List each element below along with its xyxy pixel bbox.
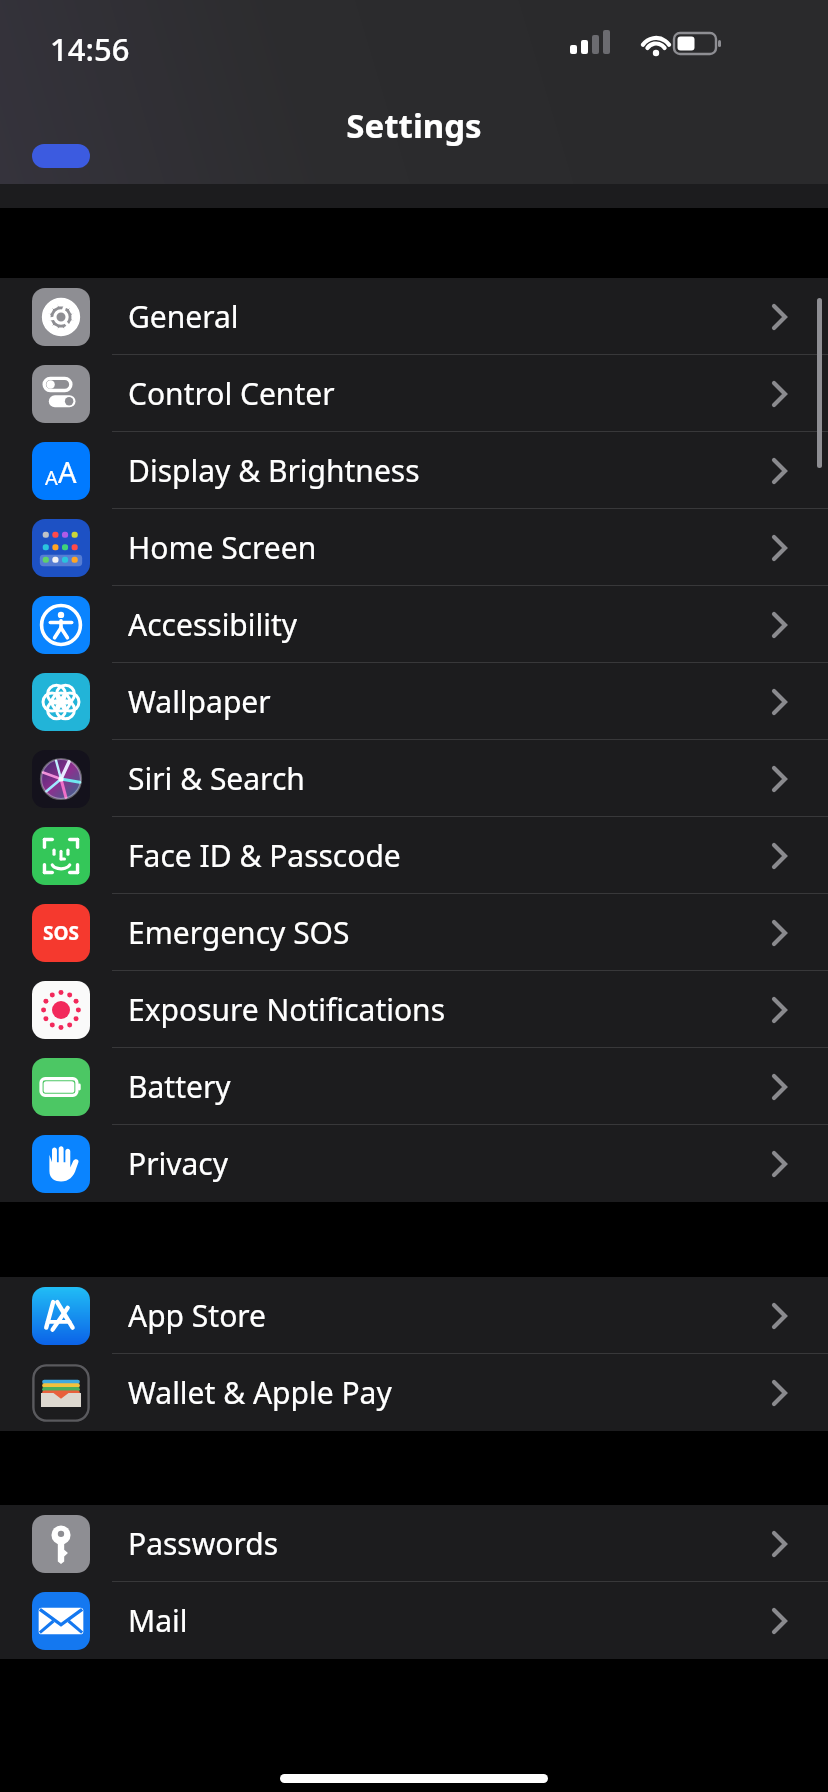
button[interactable]: Battery — [0, 1048, 828, 1125]
staticText: Wallpaper — [128, 681, 271, 722]
button[interactable]: App Store — [0, 1277, 828, 1354]
staticText: Face ID & Passcode — [128, 835, 401, 876]
button[interactable]: Accessibility — [0, 586, 828, 663]
button[interactable]: Home Screen — [0, 509, 828, 586]
staticText: A — [45, 464, 58, 491]
button[interactable]: Privacy — [0, 1125, 828, 1202]
button[interactable]: Siri & Search — [0, 740, 828, 817]
staticText: 14:56 — [50, 28, 130, 70]
staticText: SOS — [43, 920, 79, 946]
button[interactable]: Wallet & Apple Pay — [0, 1354, 828, 1431]
staticText: Emergency SOS — [128, 912, 350, 953]
button[interactable]: Wallpaper — [0, 663, 828, 740]
staticText: A — [58, 452, 77, 491]
button[interactable]: General — [0, 278, 828, 355]
staticText: Passwords — [128, 1523, 279, 1564]
staticText: Display & Brightness — [128, 450, 420, 491]
staticText: Home Screen — [128, 527, 317, 568]
staticText: Accessibility — [128, 604, 298, 645]
button[interactable]: SOS — [0, 894, 828, 971]
button[interactable]: Passwords — [0, 1505, 828, 1582]
button[interactable]: Face ID & Passcode — [0, 817, 828, 894]
staticText: App Store — [128, 1295, 267, 1336]
button[interactable]: Control Center — [0, 355, 828, 432]
staticText: Siri & Search — [128, 758, 305, 799]
button[interactable]: Exposure Notifications — [0, 971, 828, 1048]
button[interactable]: A — [0, 432, 828, 509]
staticText: Wallet & Apple Pay — [128, 1372, 392, 1413]
staticText: Mail — [128, 1600, 188, 1641]
staticText: Control Center — [128, 373, 335, 414]
button[interactable]: Mail — [0, 1582, 828, 1659]
staticText: Battery — [128, 1066, 231, 1107]
staticText: Exposure Notifications — [128, 989, 446, 1030]
staticText: Settings — [0, 103, 828, 148]
staticText: Privacy — [128, 1143, 229, 1184]
staticText: General — [128, 296, 239, 337]
